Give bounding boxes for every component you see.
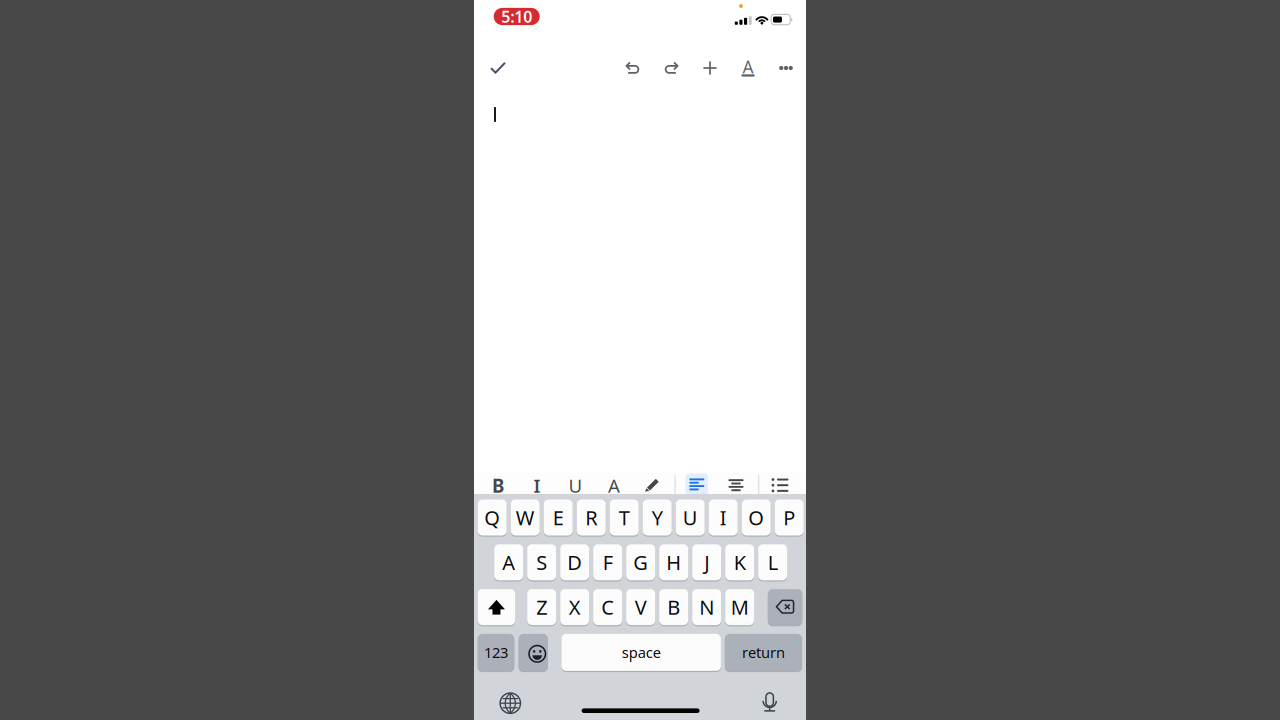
button[interactable]: B	[483, 475, 513, 496]
staticText: U	[568, 473, 582, 498]
button[interactable]: Undo	[618, 48, 648, 88]
button[interactable]: Highlight	[637, 474, 667, 495]
staticText: B	[667, 594, 680, 620]
button[interactable]: O	[742, 499, 771, 537]
button[interactable]: Next keyboard	[495, 688, 525, 718]
staticText: B	[492, 473, 504, 498]
button[interactable]: Bulleted list	[765, 475, 795, 496]
staticText: V	[635, 594, 647, 620]
button[interactable]: More options	[771, 48, 801, 88]
staticText: Q	[484, 504, 500, 531]
staticText: 5:10	[501, 6, 532, 27]
staticText: space	[622, 643, 661, 662]
button[interactable]: Delete	[768, 589, 802, 626]
staticText: S	[536, 549, 547, 576]
button[interactable]: Text formatting	[733, 48, 763, 88]
staticText: T	[619, 504, 630, 531]
staticText: M	[731, 594, 749, 620]
button[interactable]: F	[593, 544, 622, 581]
button[interactable]: E	[544, 499, 573, 537]
staticText: 123	[484, 643, 508, 662]
button[interactable]: Dictate	[755, 688, 785, 718]
button[interactable]: K	[725, 544, 754, 581]
staticText: E	[553, 504, 564, 531]
staticText: W	[516, 504, 535, 531]
button[interactable]: P	[775, 499, 804, 537]
staticText: Y	[652, 504, 663, 531]
button[interactable]: J	[692, 544, 721, 581]
staticText: G	[633, 549, 648, 576]
button[interactable]: Align center	[721, 475, 751, 496]
button[interactable]: A	[494, 544, 523, 581]
button[interactable]: M	[725, 589, 754, 626]
button[interactable]: N	[692, 589, 721, 626]
staticText: F	[603, 549, 613, 576]
staticText: I	[533, 473, 540, 498]
button[interactable]: Redo	[656, 48, 686, 88]
button[interactable]: 123	[478, 634, 514, 672]
button[interactable]: B	[659, 589, 688, 626]
staticText: U	[683, 504, 698, 531]
staticText: A	[502, 549, 515, 576]
button[interactable]: return	[725, 634, 802, 672]
staticText: J	[704, 549, 709, 576]
staticText: H	[666, 549, 681, 576]
button[interactable]: Y	[643, 499, 672, 537]
staticText: A	[742, 55, 753, 78]
staticText: P	[783, 504, 795, 531]
button[interactable]: G	[626, 544, 655, 581]
button[interactable]: I	[522, 475, 552, 496]
button[interactable]: Add	[695, 48, 725, 88]
staticText: N	[699, 594, 714, 620]
button[interactable]: Emoji	[519, 634, 548, 672]
staticText: D	[567, 549, 582, 576]
staticText: Z	[536, 594, 547, 620]
staticText: O	[748, 504, 764, 531]
button[interactable]: Align left	[682, 473, 712, 495]
staticText: C	[601, 594, 614, 620]
staticText: return	[742, 643, 785, 662]
button[interactable]: W	[511, 499, 540, 537]
button[interactable]: U	[676, 499, 705, 537]
staticText: A	[608, 473, 620, 498]
staticText: X	[569, 594, 581, 620]
button[interactable]: Done	[481, 48, 515, 88]
button[interactable]: Shift	[478, 589, 515, 626]
button[interactable]: A	[599, 475, 629, 496]
staticText: K	[734, 549, 746, 576]
button[interactable]: S	[527, 544, 556, 581]
staticText: R	[585, 504, 597, 531]
button[interactable]: V	[626, 589, 655, 626]
button[interactable]: U	[560, 475, 590, 496]
button[interactable]: T	[610, 499, 639, 537]
button[interactable]: space	[561, 634, 721, 672]
button[interactable]: L	[758, 544, 787, 581]
button[interactable]: C	[593, 589, 622, 626]
button[interactable]: D	[560, 544, 589, 581]
staticText: I	[720, 504, 727, 531]
button[interactable]: Q	[478, 499, 507, 537]
staticText: L	[768, 549, 778, 576]
button[interactable]: I	[709, 499, 738, 537]
button[interactable]: Z	[527, 589, 556, 626]
button[interactable]: H	[659, 544, 688, 581]
button[interactable]: R	[577, 499, 606, 537]
button[interactable]: X	[560, 589, 589, 626]
